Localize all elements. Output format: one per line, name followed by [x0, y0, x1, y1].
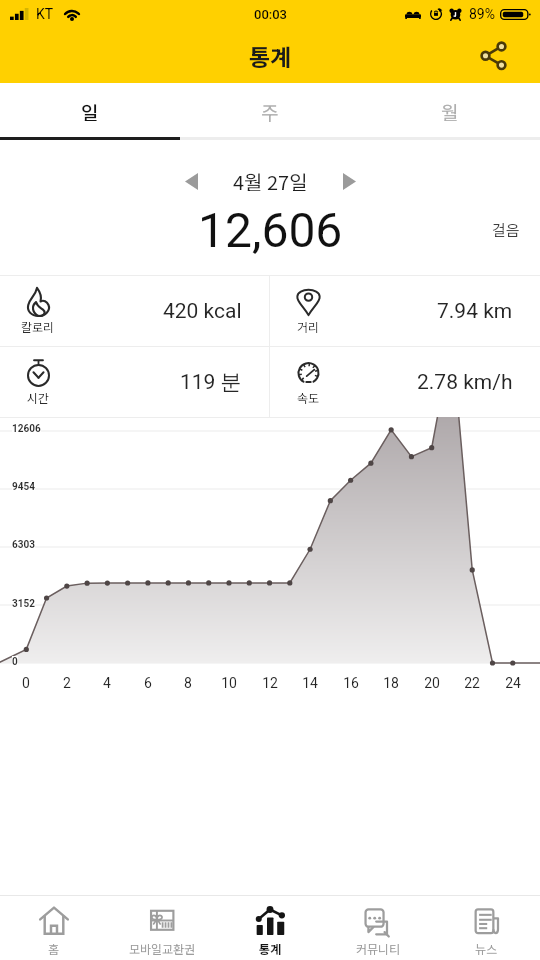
- staticText: 7.94 km: [437, 299, 513, 324]
- button[interactable]: 커뮤니티: [324, 896, 432, 960]
- staticText: 일: [81, 98, 99, 126]
- staticText: 6: [136, 675, 160, 691]
- staticText: 3152: [12, 598, 35, 610]
- staticText: 119 분: [180, 369, 242, 395]
- button[interactable]: 홈: [0, 896, 108, 960]
- staticText: 89%: [469, 6, 495, 22]
- button[interactable]: 통계: [216, 896, 324, 960]
- button[interactable]: 속도: [270, 347, 540, 417]
- staticText: 9454: [12, 481, 35, 493]
- staticText: 4: [95, 675, 119, 691]
- button[interactable]: 주: [180, 83, 360, 140]
- staticText: 00:03: [254, 7, 287, 22]
- button[interactable]: 뉴스: [432, 896, 540, 960]
- staticText: 16: [339, 675, 363, 691]
- staticText: 12,606: [198, 202, 343, 258]
- staticText: 0: [12, 656, 18, 668]
- staticText: KT: [36, 6, 54, 22]
- staticText: 0: [14, 675, 38, 691]
- button[interactable]: 거리: [270, 276, 540, 346]
- staticText: 뉴스: [475, 940, 498, 957]
- button[interactable]: 칼로리: [0, 276, 269, 346]
- staticText: 걸음: [492, 219, 520, 241]
- button[interactable]: 월: [360, 83, 540, 140]
- staticText: 주: [261, 98, 279, 126]
- staticText: 6303: [12, 539, 35, 551]
- button[interactable]: Previous day: [171, 161, 212, 202]
- staticText: 12606: [12, 423, 41, 435]
- staticText: 통계: [249, 39, 292, 72]
- staticText: 24: [501, 675, 525, 691]
- button[interactable]: 시간: [0, 347, 269, 417]
- staticText: 2.78 km/h: [417, 370, 513, 395]
- staticText: 12: [258, 675, 282, 691]
- button[interactable]: Share: [446, 28, 540, 83]
- staticText: 커뮤니티: [356, 940, 401, 957]
- staticText: 20: [420, 675, 444, 691]
- staticText: 모바일교환권: [129, 940, 196, 957]
- staticText: 거리: [297, 318, 320, 335]
- staticText: 4월 27일: [233, 167, 308, 196]
- staticText: 2: [55, 675, 79, 691]
- button[interactable]: Next day: [329, 161, 370, 202]
- staticText: 22: [460, 675, 484, 691]
- staticText: 14: [298, 675, 322, 691]
- staticText: 홈: [48, 940, 60, 957]
- staticText: 8: [176, 675, 200, 691]
- staticText: 칼로리: [21, 318, 55, 335]
- staticText: 속도: [297, 389, 320, 406]
- staticText: 18: [379, 675, 403, 691]
- button[interactable]: 모바일교환권: [108, 896, 216, 960]
- staticText: 통계: [259, 940, 282, 957]
- staticText: 10: [217, 675, 241, 691]
- button[interactable]: 일: [0, 83, 180, 140]
- staticText: 420 kcal: [163, 299, 242, 324]
- staticText: 시간: [27, 389, 50, 406]
- staticText: 월: [441, 98, 459, 126]
